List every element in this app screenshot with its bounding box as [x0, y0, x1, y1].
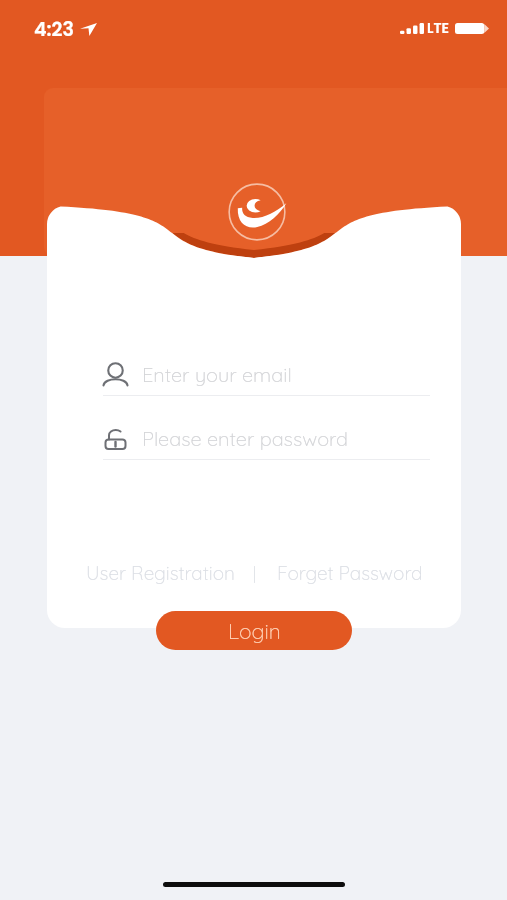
button[interactable]: User Registration [86, 561, 235, 585]
staticText: User Registration [86, 561, 235, 585]
staticText: Forget Password [277, 561, 423, 585]
staticText: 4:23 [34, 16, 74, 43]
staticText: LTE [427, 18, 449, 38]
button[interactable]: Login [156, 611, 352, 650]
button[interactable]: Forget Password [277, 561, 423, 585]
staticText: | [253, 563, 257, 584]
staticText: Please enter password [142, 426, 348, 451]
staticText: Login [228, 618, 281, 644]
staticText: Enter your email [142, 362, 292, 387]
